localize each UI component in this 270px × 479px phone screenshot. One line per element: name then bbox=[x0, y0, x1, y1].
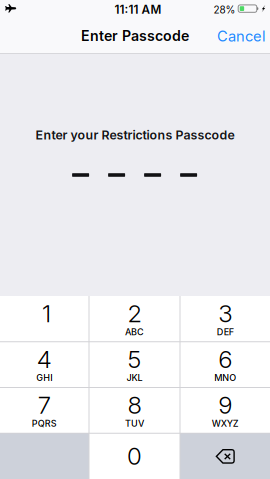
staticText: 2 bbox=[127, 299, 141, 328]
staticText: MNO bbox=[214, 372, 236, 383]
button[interactable]: 6 bbox=[180, 342, 270, 387]
button[interactable]: 9 bbox=[180, 388, 270, 433]
button[interactable]: 0 bbox=[89, 434, 179, 479]
staticText: ABC bbox=[125, 326, 144, 337]
staticText: 5 bbox=[127, 345, 141, 374]
staticText: TUV bbox=[125, 418, 144, 429]
staticText: GHI bbox=[36, 372, 52, 383]
button[interactable]: 8 bbox=[89, 388, 179, 433]
staticText: 9 bbox=[218, 390, 232, 419]
button[interactable]: 1 bbox=[0, 296, 88, 341]
staticText: 1 bbox=[42, 299, 51, 328]
button[interactable]: Delete bbox=[180, 434, 270, 479]
staticText: 11:11 AM bbox=[114, 2, 161, 17]
staticText: Enter Passcode bbox=[81, 27, 189, 44]
staticText: WXYZ bbox=[212, 418, 239, 429]
button[interactable]: 2 bbox=[89, 296, 179, 341]
staticText: 0 bbox=[127, 442, 142, 471]
staticText: 8 bbox=[127, 390, 141, 419]
button[interactable]: Cancel bbox=[212, 20, 270, 52]
staticText: 4 bbox=[37, 345, 52, 374]
staticText: PQRS bbox=[32, 418, 57, 429]
staticText: Enter your Restrictions Passcode bbox=[35, 127, 234, 142]
staticText: 7 bbox=[38, 390, 51, 419]
staticText: 6 bbox=[218, 345, 232, 374]
staticText: 28% bbox=[213, 4, 235, 16]
button[interactable]: 5 bbox=[89, 342, 179, 387]
button[interactable]: 4 bbox=[0, 342, 88, 387]
staticText: DEF bbox=[217, 326, 234, 337]
button[interactable]: 3 bbox=[180, 296, 270, 341]
staticText: 3 bbox=[218, 299, 232, 328]
staticText: JKL bbox=[126, 372, 142, 383]
button[interactable]: 7 bbox=[0, 388, 88, 433]
staticText: Cancel bbox=[217, 27, 266, 45]
